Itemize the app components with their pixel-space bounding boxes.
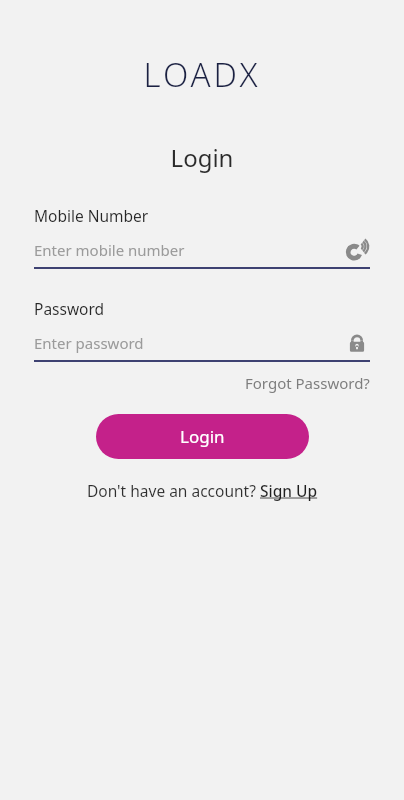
staticText: Mobile Number bbox=[34, 205, 149, 226]
staticText: Login bbox=[180, 425, 225, 448]
button[interactable]: Enter mobile number bbox=[34, 237, 370, 263]
button[interactable]: Login bbox=[96, 414, 309, 459]
button[interactable]: Enter password bbox=[34, 330, 370, 356]
button[interactable]: Forgot Password? bbox=[245, 373, 370, 393]
staticText: Enter mobile number bbox=[34, 240, 344, 260]
staticText: Don't have an account? bbox=[87, 480, 260, 501]
staticText: Forgot Password? bbox=[245, 373, 370, 393]
staticText: Password bbox=[34, 298, 105, 319]
button[interactable]: Show password bbox=[344, 330, 370, 356]
staticText: Login bbox=[0, 141, 404, 174]
staticText: LOADX bbox=[0, 52, 404, 97]
button[interactable]: Sign Up bbox=[260, 480, 318, 501]
staticText: Enter password bbox=[34, 333, 344, 353]
button[interactable]: Phone bbox=[344, 237, 370, 263]
staticText: Sign Up bbox=[260, 480, 318, 501]
